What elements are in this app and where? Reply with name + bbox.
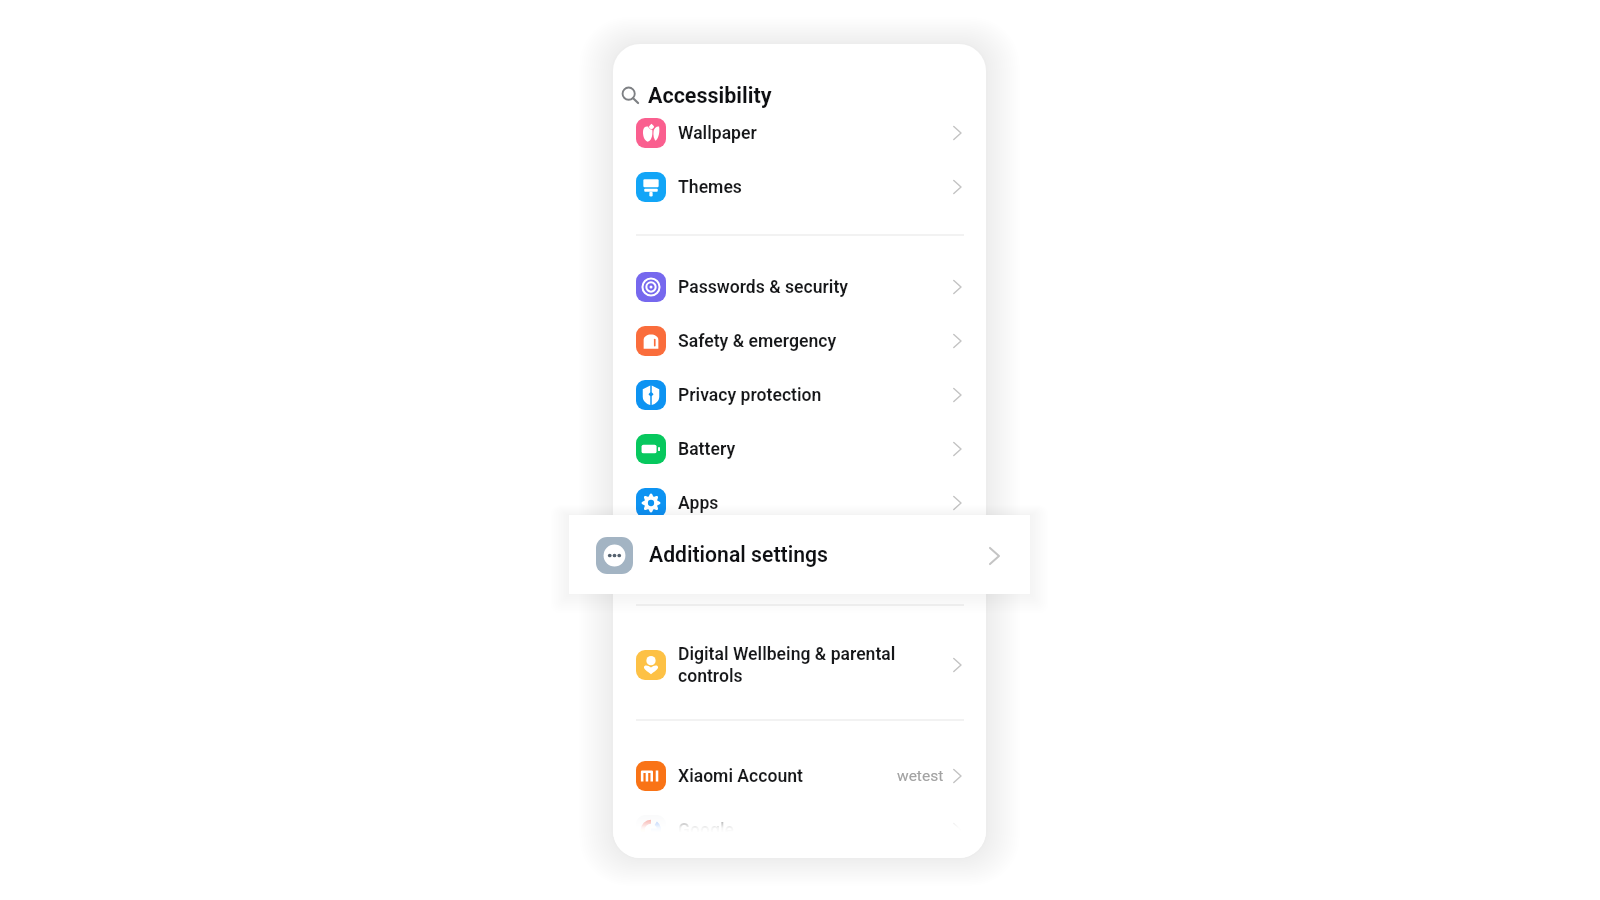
button[interactable]: Passwords & security bbox=[613, 260, 986, 314]
button[interactable]: Google bbox=[613, 803, 986, 857]
button[interactable]: Digital Wellbeing & parental controls bbox=[613, 638, 986, 692]
button[interactable]: Battery bbox=[613, 422, 986, 476]
staticText: Passwords & security bbox=[678, 277, 849, 298]
staticText: Additional settings bbox=[678, 547, 827, 568]
staticText: Google bbox=[678, 820, 734, 841]
staticText: Privacy protection bbox=[678, 385, 822, 406]
staticText: Battery bbox=[678, 439, 736, 460]
staticText: Safety & emergency bbox=[678, 331, 837, 352]
button[interactable]: Search settings bbox=[619, 84, 642, 107]
button[interactable]: Themes bbox=[613, 160, 986, 214]
button[interactable]: Xiaomi Account bbox=[613, 749, 986, 803]
staticText: Wallpaper bbox=[678, 123, 757, 144]
button[interactable]: Wallpaper bbox=[613, 106, 986, 160]
staticText: Xiaomi Account bbox=[678, 766, 803, 787]
staticText: wetest bbox=[897, 767, 944, 785]
staticText: Apps bbox=[678, 493, 719, 514]
button[interactable]: Additional settings bbox=[569, 515, 1030, 594]
button[interactable]: Safety & emergency bbox=[613, 314, 986, 368]
staticText: Digital Wellbeing & parental controls bbox=[678, 644, 896, 686]
staticText: Themes bbox=[678, 177, 742, 198]
staticText: Accessibility bbox=[648, 83, 772, 108]
button[interactable]: Apps bbox=[613, 476, 986, 530]
staticText: Additional settings bbox=[649, 542, 828, 567]
button[interactable]: Privacy protection bbox=[613, 368, 986, 422]
button[interactable]: Additional settings bbox=[613, 530, 986, 584]
